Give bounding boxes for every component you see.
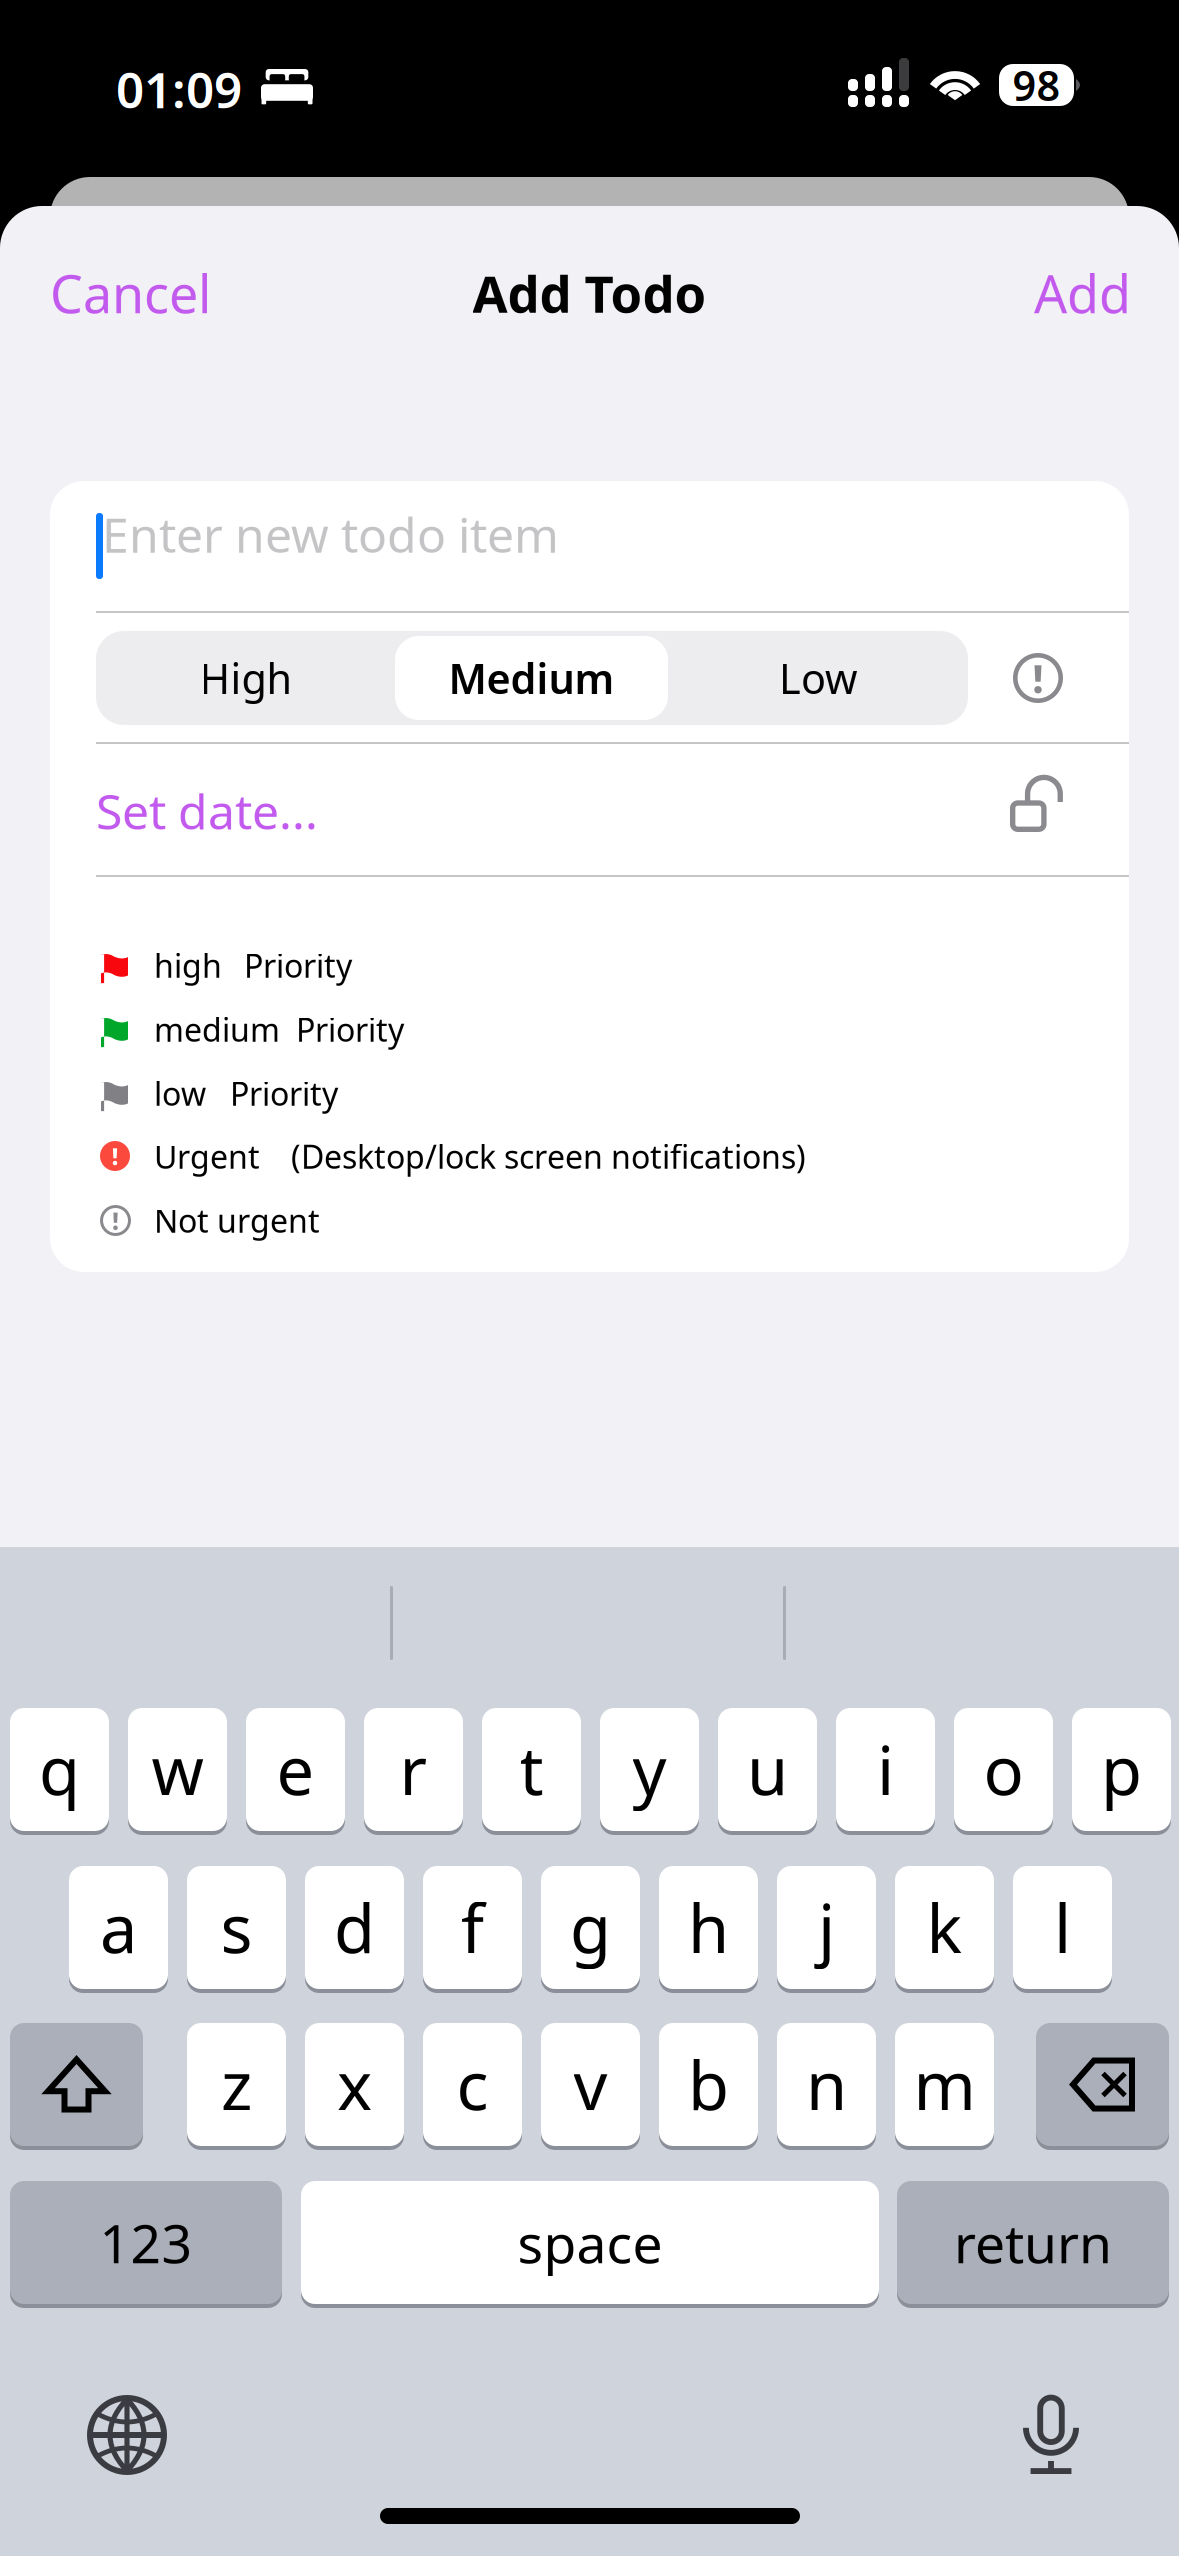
staticText: c xyxy=(456,2040,488,2129)
staticText: low xyxy=(154,1072,206,1115)
staticText: a xyxy=(100,1883,137,1972)
button[interactable]: v xyxy=(541,2019,640,2150)
staticText: i xyxy=(877,1725,894,1814)
staticText: e xyxy=(276,1725,314,1814)
button[interactable]: s xyxy=(187,1862,286,1993)
button[interactable]: f xyxy=(423,1862,522,1993)
staticText: 01:09 xyxy=(116,56,242,122)
staticText: j xyxy=(818,1883,835,1972)
button[interactable]: b xyxy=(659,2019,758,2150)
button[interactable]: Cancel xyxy=(50,255,225,331)
staticText: Set date... xyxy=(96,779,318,843)
button[interactable]: h xyxy=(659,1862,758,1993)
staticText: Add xyxy=(1034,258,1131,328)
button[interactable]: w xyxy=(128,1704,227,1835)
staticText: Medium xyxy=(448,651,614,705)
button[interactable]: e xyxy=(246,1704,345,1835)
button[interactable]: m xyxy=(895,2019,994,2150)
staticText: x xyxy=(337,2040,372,2129)
staticText: high xyxy=(154,944,222,987)
staticText: Priority xyxy=(244,944,352,987)
button[interactable]: Set date... xyxy=(96,781,516,841)
button[interactable]: g xyxy=(541,1862,640,1993)
staticText: w xyxy=(151,1725,203,1814)
button[interactable]: y xyxy=(600,1704,699,1835)
staticText: medium xyxy=(154,1008,280,1051)
staticText: (Desktop/lock screen notifications) xyxy=(291,1135,806,1178)
staticText: f xyxy=(461,1883,484,1972)
button[interactable]: u xyxy=(718,1704,817,1835)
button[interactable]: t xyxy=(482,1704,581,1835)
staticText: h xyxy=(688,1883,729,1972)
button[interactable]: p xyxy=(1072,1704,1171,1835)
staticText: Add Todo xyxy=(472,259,706,327)
staticText: Priority xyxy=(296,1008,404,1051)
staticText: Not urgent xyxy=(154,1199,320,1242)
staticText: l xyxy=(1054,1883,1071,1972)
button[interactable]: Delete xyxy=(1036,2019,1169,2150)
staticText: return xyxy=(954,2207,1112,2278)
button[interactable]: space xyxy=(301,2177,879,2308)
button[interactable]: High xyxy=(101,631,391,725)
staticText: Low xyxy=(779,651,857,705)
button[interactable]: Add xyxy=(991,255,1131,331)
button[interactable]: a xyxy=(69,1862,168,1993)
button[interactable]: x xyxy=(305,2019,404,2150)
staticText: Cancel xyxy=(50,258,211,328)
staticText: r xyxy=(399,1725,427,1814)
button[interactable]: d xyxy=(305,1862,404,1993)
button[interactable]: 123 xyxy=(10,2177,282,2308)
staticText: z xyxy=(221,2040,252,2129)
staticText: 98 xyxy=(1012,58,1060,112)
staticText: d xyxy=(334,1883,375,1972)
button[interactable]: Shift xyxy=(10,2019,143,2150)
staticText: u xyxy=(747,1725,788,1814)
staticText: o xyxy=(983,1725,1023,1814)
staticText: t xyxy=(519,1725,543,1814)
staticText: y xyxy=(632,1725,666,1814)
staticText: 123 xyxy=(99,2207,192,2278)
button[interactable]: Dictate xyxy=(1023,2390,1079,2474)
button[interactable]: r xyxy=(364,1704,463,1835)
staticText: b xyxy=(688,2040,729,2129)
button[interactable]: j xyxy=(777,1862,876,1993)
staticText: m xyxy=(913,2040,975,2129)
button[interactable]: Next keyboard xyxy=(87,2395,167,2475)
button[interactable]: Urgency xyxy=(995,635,1081,721)
staticText: space xyxy=(517,2207,662,2278)
staticText: v xyxy=(573,2040,607,2129)
staticText: p xyxy=(1101,1725,1142,1814)
staticText: n xyxy=(806,2040,847,2129)
staticText: Priority xyxy=(230,1072,338,1115)
staticText: s xyxy=(220,1883,252,1972)
button[interactable]: n xyxy=(777,2019,876,2150)
button[interactable]: c xyxy=(423,2019,522,2150)
button[interactable]: q xyxy=(10,1704,109,1835)
staticText: k xyxy=(926,1883,962,1972)
button[interactable]: k xyxy=(895,1862,994,1993)
staticText: Enter new todo item xyxy=(102,502,559,566)
button[interactable]: Lock xyxy=(1010,782,1066,838)
staticText: g xyxy=(570,1883,611,1972)
button[interactable]: Medium xyxy=(395,636,668,720)
button[interactable]: return xyxy=(897,2177,1169,2308)
button[interactable]: Low xyxy=(673,631,963,725)
button[interactable]: o xyxy=(954,1704,1053,1835)
button[interactable]: i xyxy=(836,1704,935,1835)
button[interactable]: z xyxy=(187,2019,286,2150)
staticText: High xyxy=(199,651,292,705)
staticText: q xyxy=(39,1725,80,1814)
button[interactable]: l xyxy=(1013,1862,1112,1993)
staticText: Urgent xyxy=(154,1135,260,1178)
